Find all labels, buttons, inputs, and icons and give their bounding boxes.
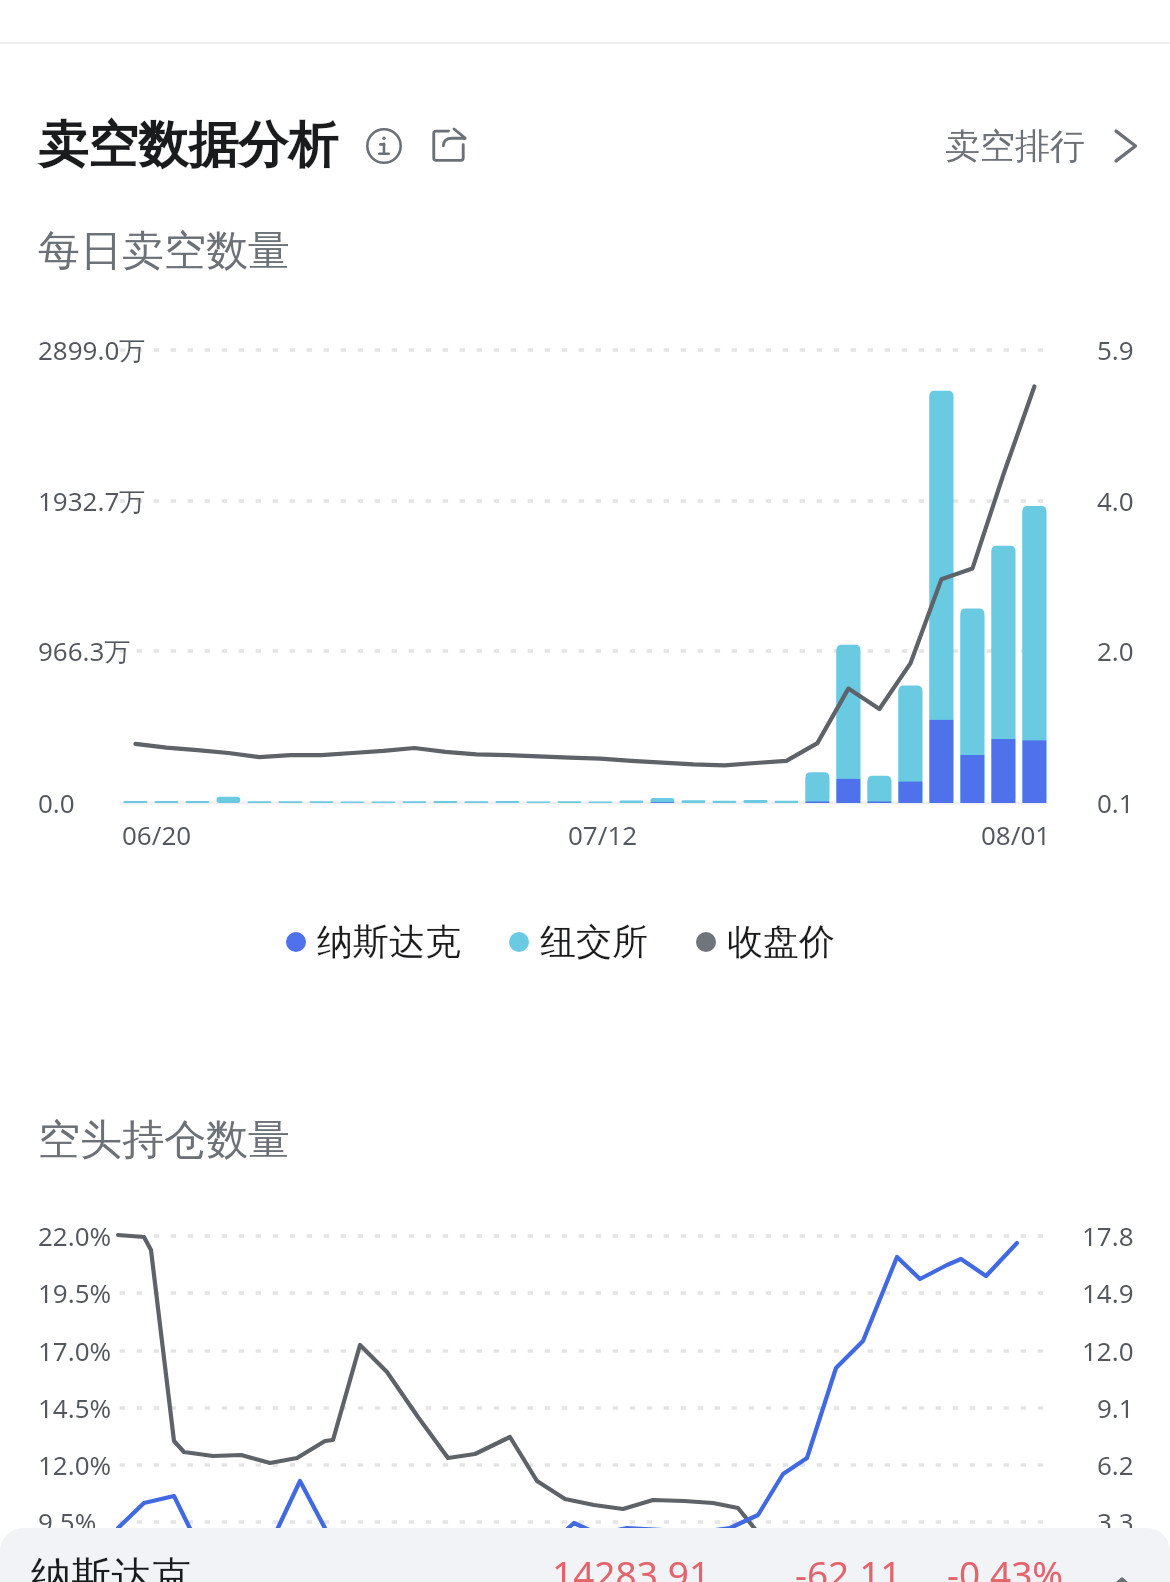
staticText: 纳斯达克 <box>31 1551 191 1582</box>
staticText: 12.0 <box>1082 1333 1134 1368</box>
staticText: 14283.91 <box>552 1548 711 1582</box>
staticText: 卖空数据分析 <box>38 114 338 177</box>
button[interactable]: 纳斯达克 <box>286 919 461 964</box>
staticText: 19.5% <box>38 1275 112 1310</box>
staticText: -0.43% <box>947 1548 1064 1582</box>
staticText: 纳斯达克 <box>317 919 461 964</box>
button[interactable]: Info <box>358 120 410 172</box>
button[interactable]: Share <box>425 121 475 171</box>
staticText: 9.5% <box>38 1504 97 1539</box>
staticText: 966.3万 <box>38 633 131 669</box>
button[interactable]: 卖空排行 <box>945 116 1145 176</box>
staticText: 收盘价 <box>727 919 835 964</box>
staticText: 17.8 <box>1082 1218 1134 1253</box>
button[interactable]: 纽交所 <box>509 919 648 964</box>
staticText: 08/01 <box>981 817 1051 852</box>
staticText: -62.11 <box>795 1548 902 1582</box>
staticText: 2899.0万 <box>38 332 146 368</box>
staticText: 纽交所 <box>540 919 648 964</box>
staticText: 4.0 <box>1097 483 1134 518</box>
staticText: 9.1 <box>1097 1390 1134 1425</box>
staticText: 每日卖空数量 <box>38 225 290 278</box>
staticText: 6.2 <box>1097 1447 1134 1482</box>
staticText: 0.1 <box>1097 785 1134 820</box>
staticText: 07/12 <box>568 817 638 852</box>
staticText: 14.5% <box>38 1390 112 1425</box>
staticText: 06/20 <box>122 817 192 852</box>
button[interactable]: 纳斯达克 <box>0 1528 1170 1582</box>
staticText: 2.0 <box>1097 633 1134 668</box>
button[interactable]: 收盘价 <box>696 919 835 964</box>
staticText: 1932.7万 <box>38 483 146 519</box>
staticText: 14.9 <box>1082 1275 1134 1310</box>
staticText: 22.0% <box>38 1218 112 1253</box>
staticText: 12.0% <box>38 1447 112 1482</box>
staticText: 卖空排行 <box>945 124 1085 168</box>
staticText: 17.0% <box>38 1333 112 1368</box>
staticText: 5.9 <box>1097 332 1134 367</box>
staticText: 0.0 <box>38 785 75 820</box>
staticText: 空头持仓数量 <box>38 1114 290 1167</box>
staticText: 3.3 <box>1097 1504 1134 1539</box>
